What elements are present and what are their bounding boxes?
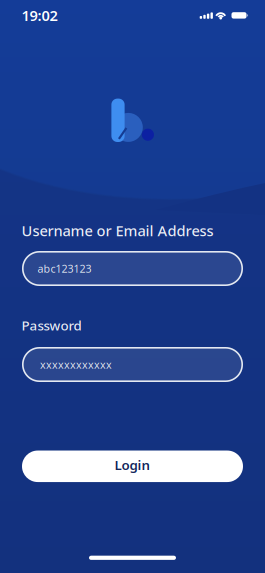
staticText: Login bbox=[114, 456, 150, 474]
staticText: abc123123 bbox=[37, 261, 91, 276]
staticText: Username or Email Address bbox=[21, 221, 213, 240]
staticText: 19:02 bbox=[21, 5, 57, 25]
staticText: Password bbox=[21, 316, 81, 334]
button[interactable]: abc123123 bbox=[22, 251, 243, 286]
button[interactable]: xxxxxxxxxxxx bbox=[22, 347, 243, 382]
button[interactable]: Login bbox=[22, 451, 243, 482]
staticText: xxxxxxxxxxxx bbox=[40, 357, 112, 372]
